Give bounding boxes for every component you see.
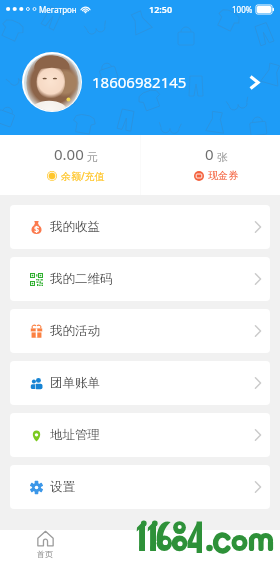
staticText: 0	[205, 144, 214, 164]
button[interactable]: 0.00	[0, 144, 152, 183]
staticText: 余额/充值	[61, 169, 105, 183]
button[interactable]: 我的二维码	[10, 257, 270, 301]
staticText: 张	[217, 150, 228, 164]
staticText: 地址管理	[50, 427, 100, 443]
staticText: 我的收益	[50, 219, 100, 235]
staticText: 0.00	[54, 144, 84, 164]
staticText: 首页	[37, 549, 53, 559]
button[interactable]: 首页	[0, 530, 90, 559]
button[interactable]: 我的收益	[10, 205, 270, 249]
staticText: 我的活动	[50, 323, 100, 339]
button[interactable]: 地址管理	[10, 413, 270, 457]
staticText: 团单账单	[50, 375, 100, 391]
staticText: 设置	[50, 479, 75, 495]
staticText: 元	[87, 150, 98, 164]
button[interactable]: 团单账单	[10, 361, 270, 405]
button[interactable]: 设置	[10, 465, 270, 509]
staticText: 100%	[232, 4, 253, 15]
button[interactable]: 18606982145	[22, 51, 262, 113]
staticText: 18606982145	[92, 72, 187, 92]
button[interactable]: 我的活动	[10, 309, 270, 353]
staticText: Мегатрон	[39, 4, 77, 15]
staticText: 现金券	[208, 169, 238, 182]
button[interactable]: 0	[152, 144, 280, 182]
staticText: 12:50	[149, 3, 173, 15]
staticText: 我的二维码	[50, 271, 113, 287]
